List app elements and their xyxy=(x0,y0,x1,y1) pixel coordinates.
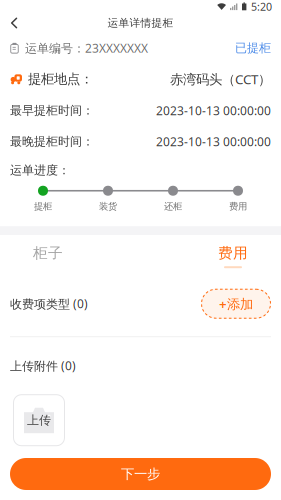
staticText: +添加 xyxy=(219,295,253,313)
staticText: 赤湾码头（CCT） xyxy=(170,70,271,88)
staticText: 装货 xyxy=(99,201,117,212)
staticText: 收费项类型 (0) xyxy=(10,296,88,312)
staticText: 已提柜 xyxy=(235,41,271,55)
button[interactable]: 费用 xyxy=(202,235,264,271)
button[interactable]: Back xyxy=(0,13,28,33)
staticText: 提柜地点： xyxy=(28,71,93,87)
staticText: 柜子 xyxy=(33,244,63,262)
staticText: 上传附件 (0) xyxy=(10,358,76,374)
staticText: 2023-10-13 00:00:00 xyxy=(156,133,271,149)
button[interactable]: 下一步 xyxy=(10,458,271,490)
staticText: 提柜 xyxy=(34,201,52,212)
staticText: 最早提柜时间： xyxy=(10,103,94,118)
staticText: 下一步 xyxy=(121,466,160,482)
button[interactable]: 柜子 xyxy=(17,235,79,271)
staticText: 上传 xyxy=(27,413,51,427)
staticText: 运单详情提柜 xyxy=(107,16,173,29)
staticText: 2023-10-13 00:00:00 xyxy=(156,102,271,118)
staticText: 运单编号：23XXXXXXX xyxy=(25,40,148,56)
button[interactable]: 上传附件 xyxy=(13,394,65,446)
staticText: 5:20 xyxy=(251,0,272,14)
staticText: 运单进度： xyxy=(10,163,70,178)
staticText: 最晚提柜时间： xyxy=(10,134,94,149)
staticText: 费用 xyxy=(229,201,247,212)
staticText: 还柜 xyxy=(164,201,182,212)
button[interactable]: +添加 xyxy=(201,289,271,319)
staticText: 费用 xyxy=(218,244,248,262)
